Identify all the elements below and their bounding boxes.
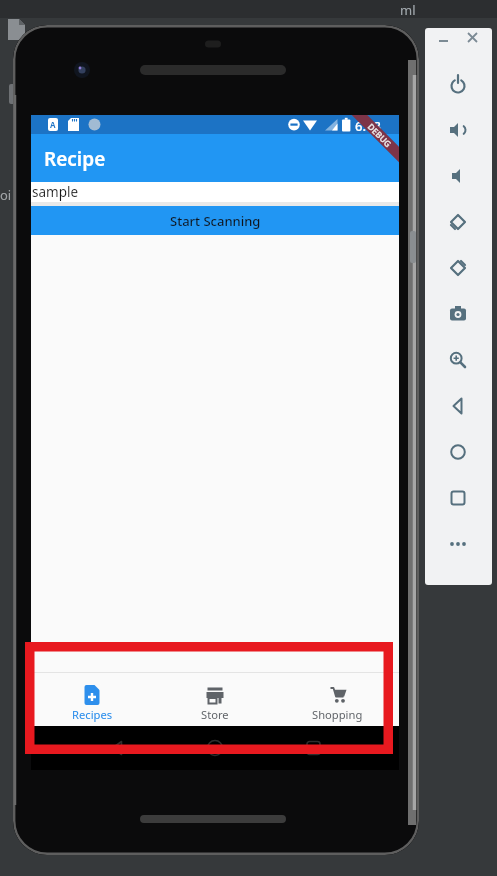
button[interactable] <box>466 31 479 44</box>
button[interactable] <box>447 257 469 279</box>
button[interactable]: Start Scanning <box>31 206 399 235</box>
staticText: sample <box>32 183 79 201</box>
button[interactable]: Shopping <box>276 673 399 726</box>
staticText: 6:18 <box>355 117 381 135</box>
button[interactable] <box>447 487 469 509</box>
staticText: Recipe <box>44 146 106 172</box>
staticText: ml <box>400 1 416 19</box>
button[interactable] <box>447 395 469 417</box>
staticText: DEBUG <box>365 121 394 150</box>
button[interactable] <box>447 211 469 233</box>
staticText: Shopping <box>312 707 363 722</box>
staticText: Store <box>201 707 229 722</box>
button[interactable] <box>447 73 469 95</box>
button[interactable]: sample <box>31 182 399 202</box>
button[interactable] <box>438 34 450 44</box>
staticText: Recipes <box>72 707 113 722</box>
staticText: Start Scanning <box>170 212 261 230</box>
button[interactable] <box>447 119 469 141</box>
button[interactable] <box>447 441 469 463</box>
staticText: oi <box>0 186 12 204</box>
staticText: A <box>50 119 56 130</box>
button[interactable]: Store <box>153 673 276 726</box>
button[interactable]: Recipes <box>31 673 153 726</box>
button[interactable] <box>447 303 469 325</box>
button[interactable] <box>447 533 469 555</box>
button[interactable] <box>447 165 469 187</box>
button[interactable] <box>447 349 469 371</box>
